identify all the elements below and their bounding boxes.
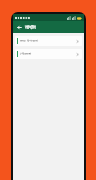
button[interactable]: Back xyxy=(15,23,23,31)
button[interactable]: পৌরসভা xyxy=(15,49,82,59)
staticText: সদর xyxy=(20,39,26,43)
staticText: মাধ্যম xyxy=(25,24,36,30)
staticText: পৌরসভা xyxy=(20,52,32,56)
staticText: উপজেলা xyxy=(27,39,39,43)
button[interactable]: সদর xyxy=(15,36,82,46)
